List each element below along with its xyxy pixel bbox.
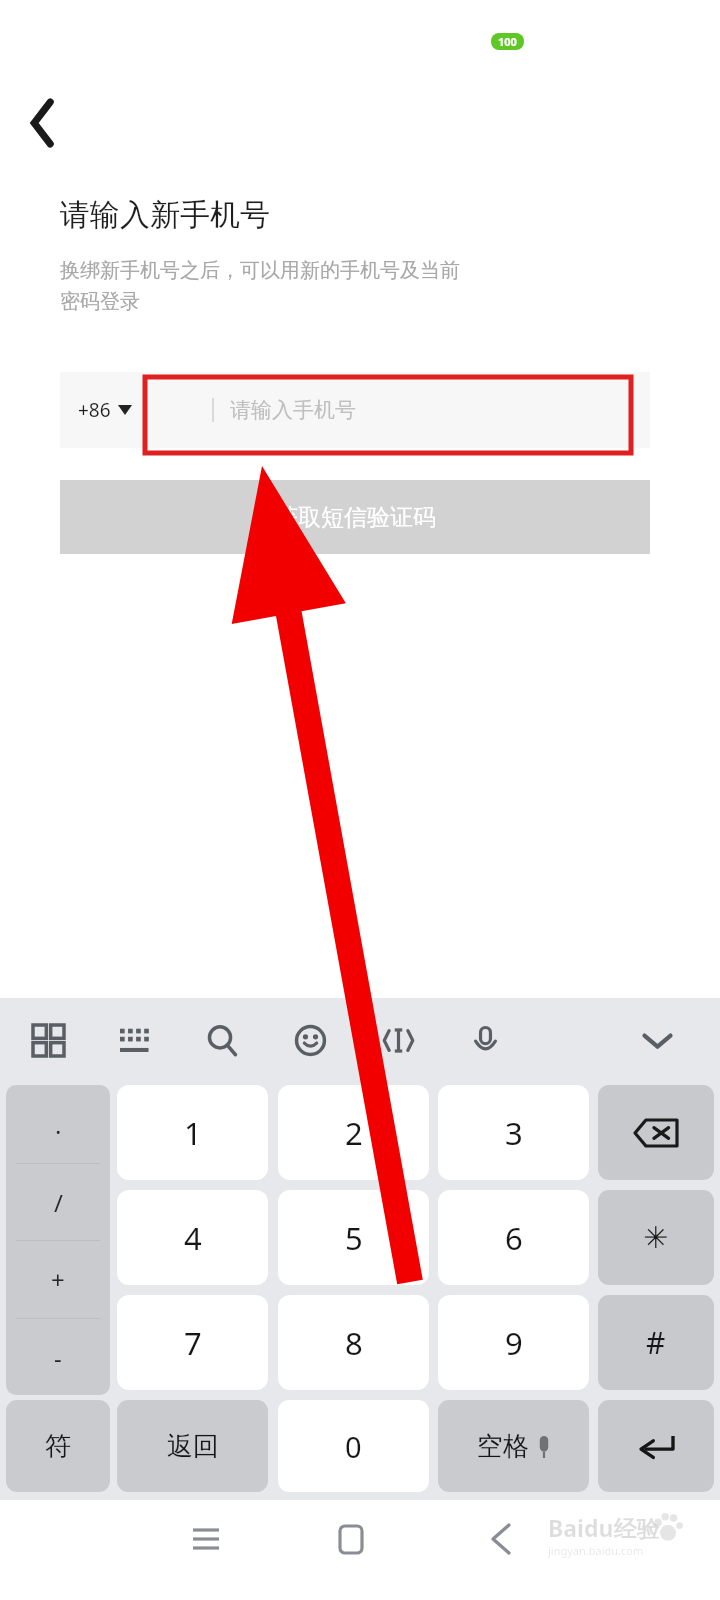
button[interactable]: Keyboard <box>115 1020 155 1060</box>
staticText: # <box>646 1322 666 1363</box>
button[interactable]: 6 <box>438 1190 589 1285</box>
button[interactable]: 5 <box>278 1190 429 1285</box>
staticText: 返回 <box>167 1430 219 1463</box>
staticText: 换绑新手机号之后，可以用新的手机号及当前 <box>60 258 460 283</box>
button[interactable]: 2 <box>278 1085 429 1180</box>
button[interactable]: ✳ <box>598 1190 714 1285</box>
button[interactable]: . <box>6 1085 110 1163</box>
staticText: ✳ <box>643 1220 669 1255</box>
button[interactable]: Emoji <box>290 1020 330 1060</box>
button[interactable]: Backspace <box>598 1085 714 1180</box>
staticText: 6 <box>505 1217 523 1259</box>
staticText: . <box>55 1108 62 1141</box>
button[interactable]: Home <box>320 1508 382 1570</box>
button[interactable]: 7 <box>117 1295 268 1390</box>
button[interactable]: Voice input <box>465 1020 505 1060</box>
staticText: 0 <box>345 1427 362 1466</box>
button[interactable]: + <box>6 1240 110 1318</box>
staticText: + <box>51 1263 65 1296</box>
button[interactable]: Hide keyboard <box>637 1020 677 1060</box>
staticText: 空格 <box>477 1430 529 1463</box>
button[interactable]: Back <box>470 1508 532 1570</box>
staticText: / <box>54 1186 63 1219</box>
staticText: 5 <box>345 1217 363 1259</box>
staticText: 9 <box>505 1322 523 1364</box>
button[interactable]: Panels <box>28 1020 68 1060</box>
button[interactable]: Search <box>202 1020 242 1060</box>
button[interactable]: 4 <box>117 1190 268 1285</box>
button[interactable]: 1 <box>117 1085 268 1180</box>
staticText: 请输入手机号 <box>230 397 356 423</box>
staticText: 3 <box>505 1112 523 1154</box>
staticText: 4 <box>184 1217 202 1259</box>
staticText: +86 <box>78 397 111 423</box>
button[interactable]: 3 <box>438 1085 589 1180</box>
button[interactable]: 空格 <box>438 1400 589 1492</box>
button[interactable]: 9 <box>438 1295 589 1390</box>
button[interactable]: 获取短信验证码 <box>60 480 650 554</box>
button[interactable]: +86 <box>78 372 172 448</box>
staticText: 2 <box>345 1112 363 1154</box>
button[interactable]: Back <box>12 92 74 154</box>
staticText: Baidu经验 <box>548 1512 660 1543</box>
staticText: 符 <box>45 1430 71 1463</box>
staticText: - <box>54 1341 62 1374</box>
button[interactable]: # <box>598 1295 714 1390</box>
button[interactable]: 请输入手机号 <box>230 372 610 448</box>
staticText: 8 <box>345 1322 363 1364</box>
button[interactable]: 0 <box>278 1400 429 1492</box>
staticText: 请输入新手机号 <box>60 196 270 234</box>
staticText: 1 <box>184 1112 202 1154</box>
button[interactable]: 8 <box>278 1295 429 1390</box>
button[interactable]: 返回 <box>117 1400 268 1492</box>
button[interactable]: / <box>6 1163 110 1241</box>
staticText: 密码登录 <box>60 289 140 314</box>
staticText: 7 <box>184 1322 202 1364</box>
button[interactable]: Recents <box>175 1508 237 1570</box>
button[interactable]: Enter <box>598 1400 714 1492</box>
staticText: 获取短信验证码 <box>275 503 436 532</box>
staticText: 100 <box>498 34 517 49</box>
button[interactable]: 符 <box>6 1400 110 1492</box>
button[interactable]: Cursor <box>378 1020 418 1060</box>
staticText: jingyan.baidu.com <box>548 1543 644 1558</box>
button[interactable]: - <box>6 1318 110 1395</box>
